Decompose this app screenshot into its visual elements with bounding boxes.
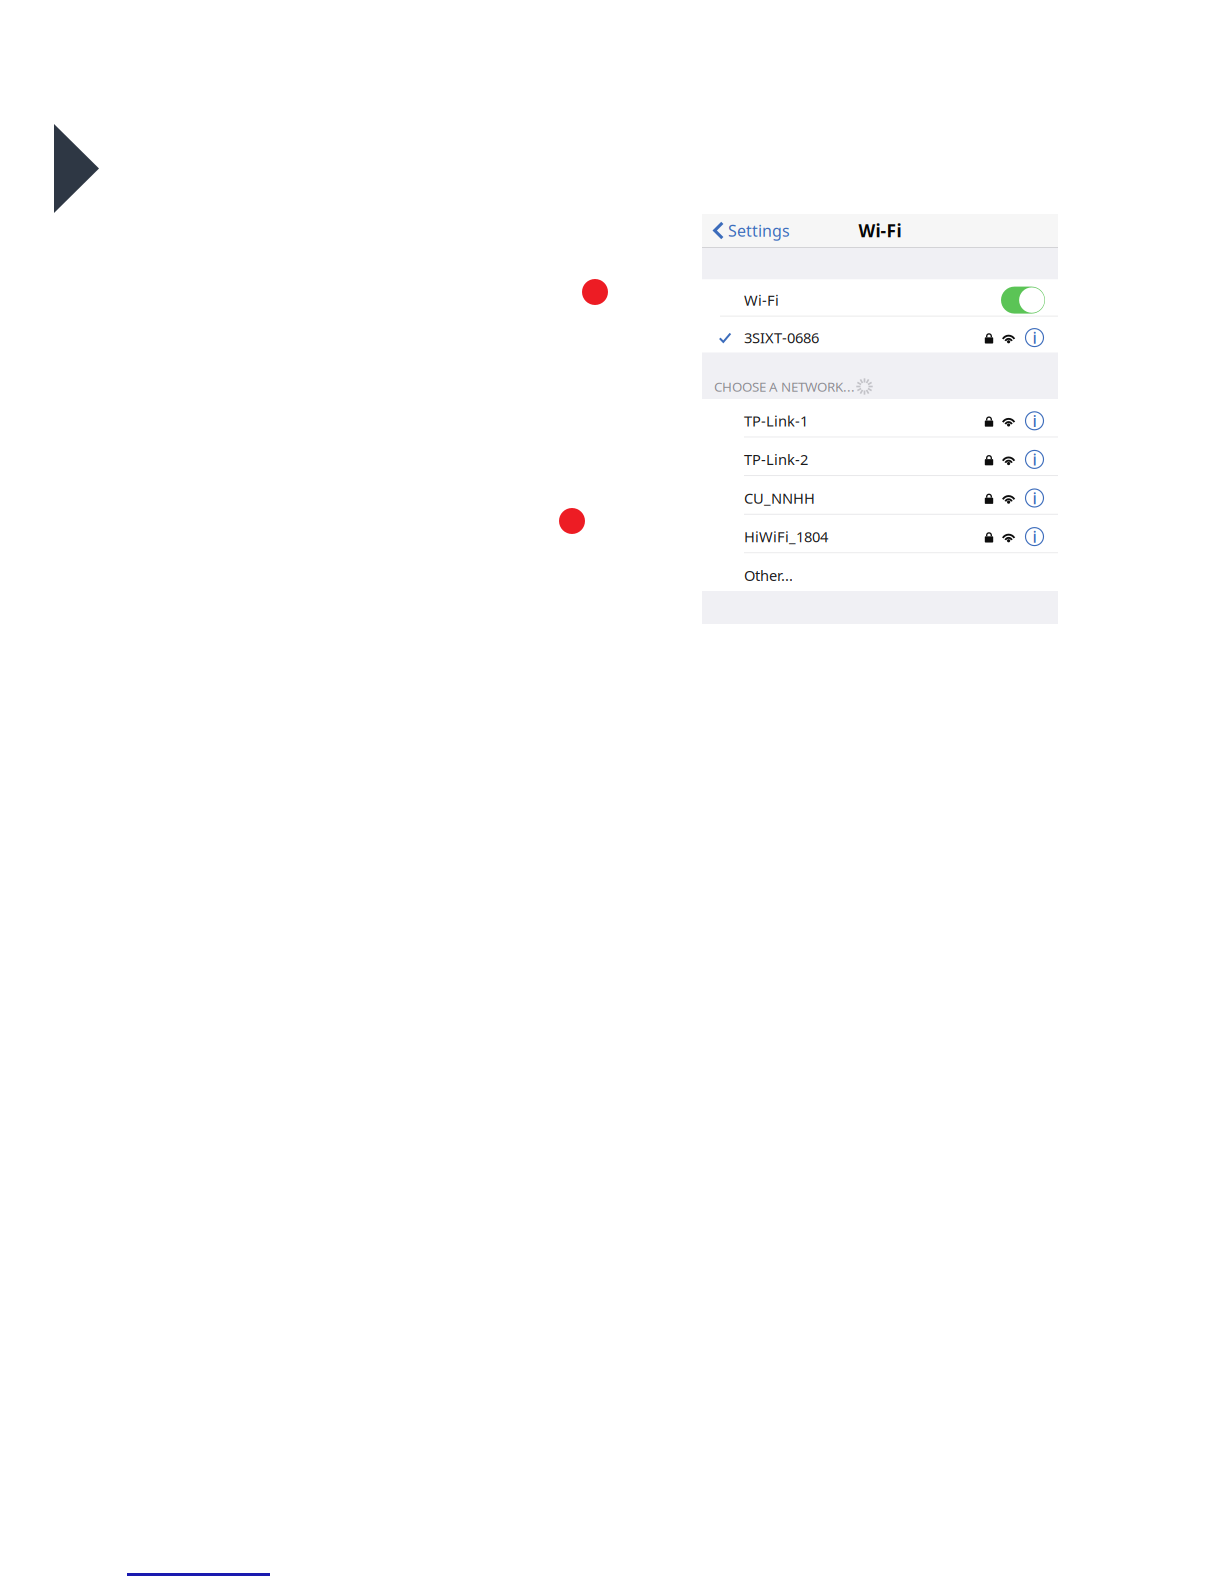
button[interactable]: More info about HiWiFi_1804	[1015, 528, 1043, 546]
staticText: i	[1032, 327, 1036, 348]
staticText: 3SIXT-0686	[744, 328, 819, 347]
staticText: CHOOSE A NETWORK...	[714, 378, 855, 395]
button[interactable]: TP-Link-2	[702, 438, 1058, 475]
button[interactable]: HiWiFi_1804	[702, 515, 1058, 552]
button[interactable]: TP-Link-1	[702, 399, 1058, 437]
staticText: i	[1032, 526, 1036, 547]
button[interactable]: Play	[54, 124, 99, 213]
staticText: i	[1032, 410, 1036, 431]
button[interactable]: Link	[0, 1573, 270, 1576]
button[interactable]: More info about TP-Link-1	[1015, 412, 1043, 430]
staticText: Wi-Fi	[744, 290, 779, 310]
staticText: Settings	[728, 220, 790, 241]
staticText: i	[1032, 449, 1036, 470]
staticText: TP-Link-1	[744, 411, 808, 431]
staticText: Other...	[744, 565, 793, 585]
button[interactable]: More info about CU_NNHH	[1015, 489, 1043, 507]
button[interactable]: More info about TP-Link-2	[1015, 450, 1043, 468]
staticText: TP-Link-2	[744, 450, 808, 469]
button[interactable]: Wi-Fi	[702, 279, 1058, 316]
staticText: CU_NNHH	[744, 488, 815, 508]
button[interactable]: Settings	[702, 214, 798, 247]
button[interactable]: Other...	[702, 553, 1058, 591]
button[interactable]: CU_NNHH	[702, 476, 1058, 514]
button[interactable]: More info about 3SIXT-0686	[1015, 329, 1043, 347]
staticText: Wi-Fi	[858, 219, 901, 242]
button[interactable]: 3SIXT-0686	[702, 317, 1058, 352]
staticText: i	[1032, 487, 1036, 509]
staticText: HiWiFi_1804	[744, 527, 828, 546]
